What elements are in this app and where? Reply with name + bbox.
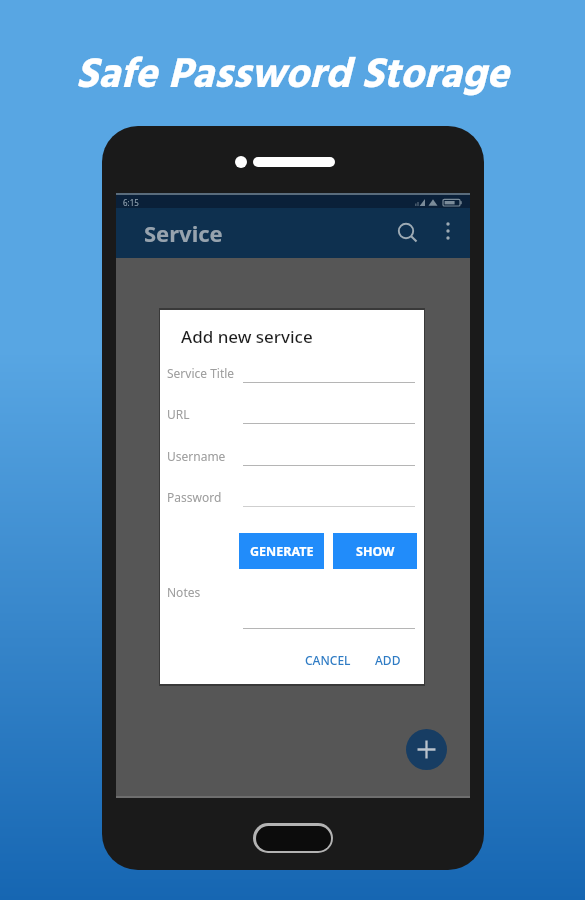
- button[interactable]: ADD: [367, 646, 409, 674]
- staticText: Username: [167, 448, 226, 464]
- button[interactable]: GENERATE: [239, 533, 324, 569]
- staticText: SHOW: [356, 543, 395, 560]
- staticText: URL: [167, 406, 190, 422]
- staticText: Safe Password Storage: [76, 42, 509, 110]
- staticText: GENERATE: [250, 543, 314, 560]
- button[interactable]: SHOW: [333, 533, 417, 569]
- staticText: 6:15: [123, 197, 139, 208]
- staticText: Service Title: [167, 365, 235, 381]
- button[interactable]: More options: [436, 219, 464, 247]
- button[interactable]: Search: [394, 219, 422, 247]
- staticText: ADD: [375, 652, 401, 668]
- button[interactable]: CANCEL: [297, 646, 359, 674]
- staticText: Notes: [167, 584, 201, 600]
- staticText: CANCEL: [305, 652, 351, 668]
- staticText: Add new service: [181, 325, 313, 348]
- staticText: Password: [167, 489, 222, 505]
- button[interactable]: Home: [253, 823, 333, 853]
- button[interactable]: Add: [406, 729, 447, 770]
- staticText: Service: [144, 218, 223, 248]
